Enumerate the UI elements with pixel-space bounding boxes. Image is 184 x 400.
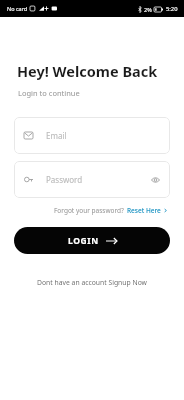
other: Password <box>24 176 33 183</box>
button[interactable]: Email <box>14 117 170 154</box>
staticText: 5:20 <box>166 5 178 13</box>
staticText: Password <box>46 174 83 185</box>
staticText: 2% <box>144 6 152 13</box>
staticText: Login to continue <box>18 88 80 98</box>
staticText: No card <box>7 5 28 12</box>
button[interactable]: Show password <box>150 175 160 185</box>
staticText: Forgot your password? <box>54 206 124 215</box>
button[interactable]: Reset Here <box>127 206 168 215</box>
staticText: Hey! Welcome Back <box>17 61 158 81</box>
button[interactable]: LOGIN <box>14 227 170 254</box>
button[interactable]: Dont have an account Signup Now <box>37 278 147 287</box>
staticText: Email <box>46 130 67 141</box>
button[interactable]: Password <box>14 161 170 198</box>
staticText: Reset Here <box>127 206 161 215</box>
staticText: Dont have an account Signup Now <box>37 278 147 287</box>
staticText: LOGIN <box>68 235 99 247</box>
other: Email <box>24 132 33 139</box>
